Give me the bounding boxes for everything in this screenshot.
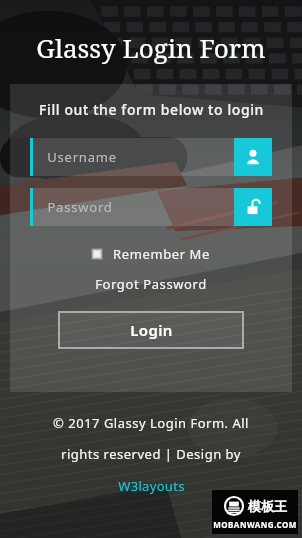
button[interactable]: W3layouts <box>114 476 189 496</box>
button[interactable]: Password <box>234 188 272 226</box>
button[interactable]: Username <box>30 138 272 176</box>
staticText: Password <box>47 198 113 216</box>
button[interactable]: Login <box>58 311 244 349</box>
button[interactable]: Username <box>234 138 272 176</box>
staticText: MOBANWANG.COM <box>213 519 297 530</box>
staticText: Forgot Password <box>95 275 207 293</box>
staticText: Remember Me <box>113 245 210 263</box>
staticText: Username <box>47 148 117 166</box>
button[interactable]: Forgot Password <box>91 273 211 295</box>
staticText: Login <box>130 320 173 340</box>
staticText: Glassy Login Form <box>36 30 266 65</box>
staticText: 模板王 <box>248 498 287 514</box>
staticText: © 2017 Glassy Login Form. All <box>53 414 249 432</box>
button[interactable]: Password <box>30 188 272 226</box>
staticText: Fill out the form below to login <box>39 100 264 119</box>
staticText: W3layouts <box>118 477 185 495</box>
staticText: rights reserved | Design by <box>61 445 241 463</box>
button[interactable]: Remember Me <box>88 243 214 265</box>
